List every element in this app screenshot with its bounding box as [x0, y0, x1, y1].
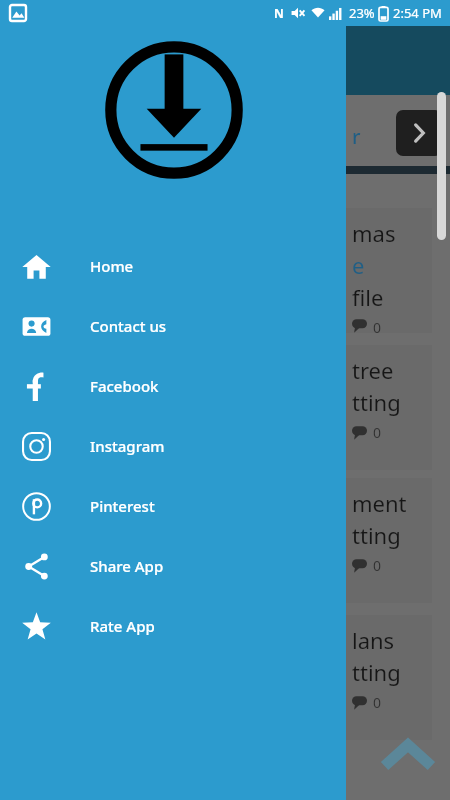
staticText: 0	[373, 693, 382, 712]
button[interactable]: mas	[10, 208, 432, 333]
button[interactable]: Rate App	[0, 596, 346, 656]
staticText: tting	[352, 657, 401, 687]
staticText: 23%	[349, 4, 375, 22]
staticText: e	[352, 250, 365, 280]
button[interactable]: Pinterest	[0, 476, 346, 536]
button[interactable]: Contact us	[0, 296, 346, 356]
button[interactable]: lans	[10, 615, 432, 740]
staticText: Rate App	[90, 616, 155, 636]
button[interactable]: Home	[0, 236, 346, 296]
staticText: tree	[352, 355, 394, 385]
button[interactable]: Facebook	[0, 356, 346, 416]
staticText: Facebook	[90, 376, 159, 396]
staticText: N	[274, 5, 284, 21]
staticText: 0	[373, 423, 382, 442]
button[interactable]: Next	[396, 110, 442, 156]
staticText: 0	[373, 318, 382, 333]
staticText: Share App	[90, 556, 164, 576]
button[interactable]: Scroll to top	[382, 728, 434, 780]
staticText: Pinterest	[90, 496, 155, 516]
staticText: lans	[352, 625, 395, 655]
button[interactable]: ment	[10, 478, 432, 603]
staticText: Contact us	[90, 316, 167, 336]
button[interactable]: Instagram	[0, 416, 346, 476]
staticText: 0	[373, 556, 382, 575]
staticText: mas	[352, 218, 396, 248]
staticText: tting	[352, 387, 401, 417]
button[interactable]: Share App	[0, 536, 346, 596]
staticText: file	[352, 282, 384, 312]
staticText: r	[352, 123, 361, 150]
staticText: tting	[352, 520, 401, 550]
button[interactable]: tree	[10, 345, 432, 470]
staticText: ment	[352, 488, 407, 518]
staticText: Instagram	[90, 436, 165, 456]
staticText: 2:54 PM	[393, 4, 442, 22]
staticText: Home	[90, 256, 134, 276]
